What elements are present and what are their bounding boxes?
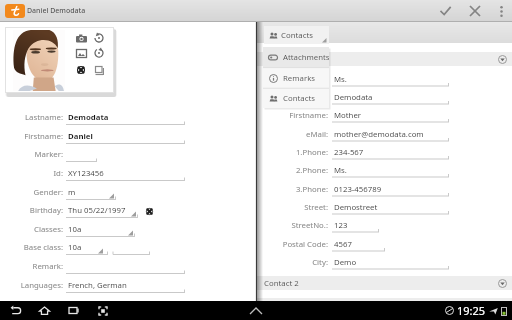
button[interactable]: 123 — [332, 216, 379, 234]
staticText: Marker: — [34, 149, 63, 160]
staticText: 2.Phone: — [295, 165, 328, 176]
button[interactable]: mother@demodata.com — [332, 125, 449, 143]
staticText: Postal Code: — [282, 239, 328, 250]
button[interactable]: Demostreet — [332, 198, 449, 216]
staticText: Demodata — [68, 112, 109, 123]
staticText: Street: — [304, 202, 328, 213]
staticText: Gender: — [33, 187, 63, 198]
button[interactable]: Cancel — [460, 0, 490, 22]
staticText: Birthday: — [29, 205, 63, 216]
button[interactable]: 10a — [66, 238, 108, 257]
button[interactable]: Contacts — [263, 88, 329, 108]
button[interactable]: Clear date — [143, 205, 155, 217]
button[interactable]: 234-567 — [332, 143, 449, 161]
staticText: Demo — [334, 257, 357, 268]
staticText: Languages: — [20, 280, 63, 291]
staticText: Classes: — [33, 224, 63, 235]
staticText: Attachments — [283, 52, 329, 63]
staticText: 19:25 — [457, 303, 486, 318]
button[interactable]: m — [66, 183, 116, 202]
staticText: Contact 2 — [264, 278, 299, 289]
staticText: Remark: — [32, 261, 63, 272]
button[interactable]: Contact 1 — [257, 52, 512, 66]
staticText: Base class: — [23, 242, 63, 253]
staticText: Thu 05/22/1997 — [68, 205, 126, 216]
staticText: 4567 — [334, 239, 352, 250]
staticText: mother@demodata.com — [334, 129, 424, 140]
staticText: Demostreet — [334, 202, 378, 213]
button[interactable]: Screenshot — [88, 301, 117, 320]
button[interactable]: Remarks — [263, 68, 329, 88]
staticText: Lastname: — [290, 92, 328, 103]
staticText: eMail: — [306, 129, 328, 140]
staticText: Lastname: — [25, 112, 63, 123]
staticText: Daniel — [68, 131, 93, 142]
button[interactable]: Demodata — [332, 88, 449, 106]
staticText: 123 — [334, 220, 348, 231]
button[interactable]: Crop — [92, 63, 106, 77]
button[interactable]: Recents — [59, 301, 88, 320]
button[interactable]: Contact 2 — [257, 276, 512, 290]
staticText: Mother — [334, 110, 362, 121]
staticText: Contacts — [283, 93, 315, 104]
staticText: 10a — [68, 224, 82, 235]
staticText: 3.Phone: — [295, 184, 328, 195]
staticText: City: — [312, 257, 328, 268]
button[interactable]: Contacts — [264, 26, 329, 44]
button[interactable]: Ms. — [332, 70, 449, 88]
button[interactable]: French, German — [66, 276, 185, 295]
staticText: m — [68, 187, 76, 198]
button[interactable]: Attachments — [263, 47, 329, 68]
button[interactable]: Back — [1, 301, 30, 320]
button[interactable]: Daniel — [66, 127, 185, 146]
staticText: StreetNo.: — [291, 220, 328, 231]
staticText: Id: — [53, 168, 63, 179]
staticText: Daniel Demodata — [27, 6, 86, 16]
staticText: 10a — [68, 242, 82, 253]
staticText: French, German — [68, 280, 127, 291]
staticText: 234-567 — [334, 147, 364, 158]
button[interactable]: 10a — [66, 220, 135, 239]
staticText: Sex: — [313, 74, 328, 85]
staticText: XY123456 — [68, 168, 104, 179]
staticText: Firstname: — [289, 110, 328, 121]
staticText: 0123-456789 — [334, 184, 382, 195]
staticText: 1.Phone: — [295, 147, 328, 158]
staticText: Demodata — [334, 92, 373, 103]
button[interactable]: 4567 — [332, 235, 385, 253]
staticText: Ms. — [334, 74, 347, 85]
button[interactable]: Demo — [332, 253, 449, 271]
button[interactable]: Rotate right — [92, 46, 106, 60]
button[interactable]: Save — [430, 0, 460, 22]
button[interactable]: Demodata — [66, 108, 185, 127]
button[interactable]: Ms. — [332, 161, 449, 179]
staticText: Remarks — [283, 73, 316, 84]
button[interactable]: Choose image — [74, 46, 88, 60]
staticText: Ms. — [334, 165, 347, 176]
button[interactable]: XY123456 — [66, 164, 185, 183]
button[interactable] — [66, 145, 97, 164]
button[interactable]: Thu 05/22/1997 — [66, 201, 138, 220]
button[interactable]: Rotate left — [92, 31, 106, 45]
button[interactable]: Home — [30, 301, 59, 320]
staticText: Contact 1 — [264, 54, 299, 65]
button[interactable]: More options — [490, 0, 512, 22]
button[interactable]: Mother — [332, 106, 449, 124]
button[interactable]: 0123-456789 — [332, 180, 449, 198]
staticText: Firstname: — [24, 131, 63, 142]
button[interactable]: Contact 3 — [257, 298, 512, 301]
button[interactable]: Take photo — [74, 31, 88, 45]
staticText: Contacts — [281, 30, 313, 41]
button[interactable]: Delete photo — [74, 63, 88, 77]
button[interactable] — [66, 257, 185, 276]
